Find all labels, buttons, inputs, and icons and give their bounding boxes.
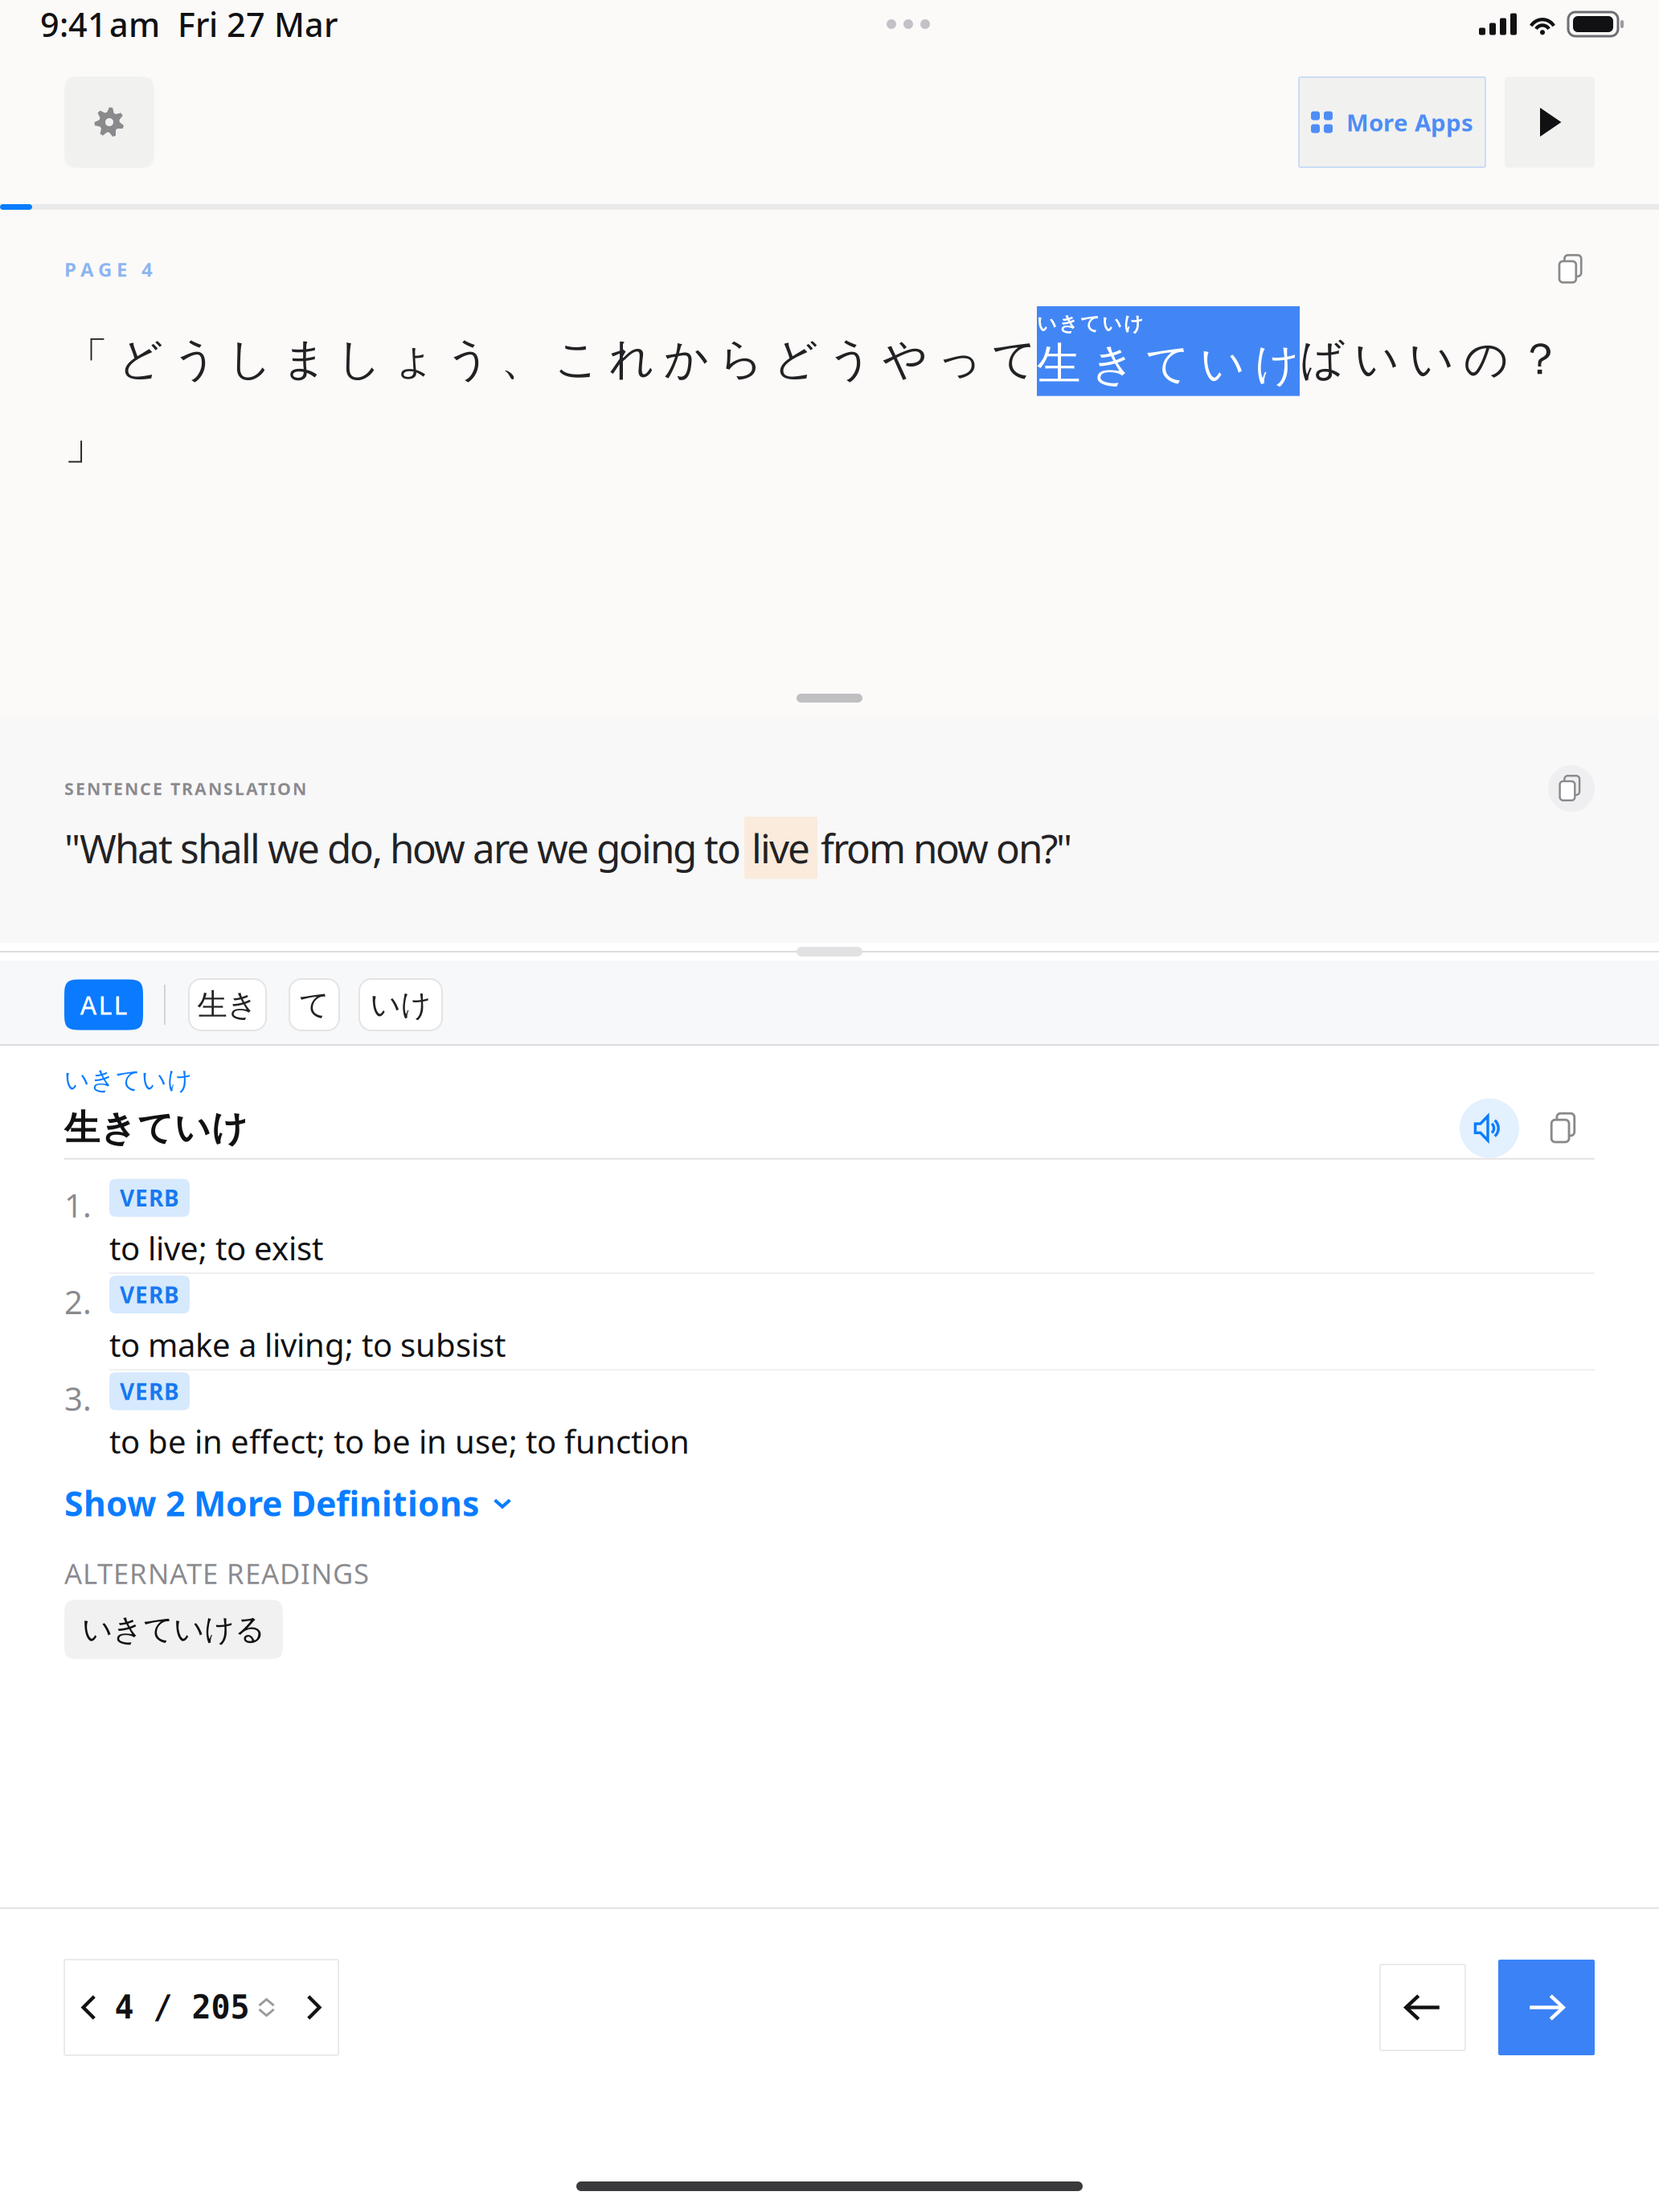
staticText: 9:41	[40, 2, 107, 46]
button[interactable]: て	[289, 979, 339, 1030]
button[interactable]: いけ	[359, 979, 442, 1030]
button[interactable]: Play audio	[1460, 1099, 1519, 1158]
button[interactable]: Forward	[1498, 1960, 1595, 2055]
button[interactable]: Copy translation	[1548, 765, 1595, 812]
staticText: ばいいの？	[1300, 332, 1563, 386]
staticText: ALTERNATE READINGS	[64, 1555, 369, 1592]
staticText: 2.	[64, 1280, 92, 1323]
button[interactable]: Back	[1380, 1964, 1465, 2050]
staticText: 生き	[197, 986, 258, 1023]
staticText: to make a living; to subsist	[109, 1323, 506, 1366]
staticText: 」	[64, 417, 109, 471]
staticText: 生きていけ	[1037, 337, 1300, 391]
staticText: いきていけ	[64, 1065, 192, 1095]
button[interactable]: Copy word	[1535, 1099, 1595, 1158]
button[interactable]: Show 2 More Definitions	[64, 1463, 513, 1534]
staticText: て	[299, 986, 330, 1023]
staticText: from now on?"	[821, 821, 1072, 874]
staticText: いきていけ	[1037, 312, 1144, 336]
staticText: いけ	[370, 986, 431, 1023]
button[interactable]: Next page	[288, 1979, 338, 2036]
staticText: 3.	[64, 1377, 92, 1420]
staticText: to be in effect; to be in use; to functi…	[109, 1420, 690, 1463]
button[interactable]: Previous page	[65, 1979, 115, 2036]
staticText: 4 / 205	[115, 1989, 250, 2026]
button[interactable]: Copy sentence	[1550, 247, 1595, 292]
staticText: live	[752, 821, 810, 874]
staticText: 1.	[64, 1184, 92, 1226]
staticText: Show 2 More Definitions	[64, 1480, 479, 1526]
staticText: VERB	[120, 1280, 179, 1310]
staticText: VERB	[120, 1376, 179, 1406]
staticText: VERB	[120, 1183, 179, 1213]
staticText: to live; to exist	[109, 1226, 323, 1269]
staticText: いきていける	[82, 1611, 265, 1648]
staticText: ALL	[80, 988, 127, 1022]
staticText: PAGE 4	[64, 256, 153, 282]
staticText: 生きていけ	[64, 1106, 248, 1150]
staticText: 「どうしましょう、これからどうやって	[64, 332, 1037, 386]
button[interactable]: Settings	[64, 76, 154, 168]
staticText: More Apps	[1346, 107, 1473, 138]
button[interactable]: Play	[1505, 77, 1595, 168]
staticText: am	[109, 2, 160, 46]
button[interactable]: More Apps	[1299, 77, 1485, 167]
staticText: "What shall we do, how are we going to	[64, 821, 741, 874]
button[interactable]: ALL	[64, 979, 143, 1030]
staticText: SENTENCE TRANSLATION	[64, 777, 306, 800]
staticText: Fri 27 Mar	[178, 2, 338, 46]
button[interactable]: 生き	[189, 979, 266, 1030]
